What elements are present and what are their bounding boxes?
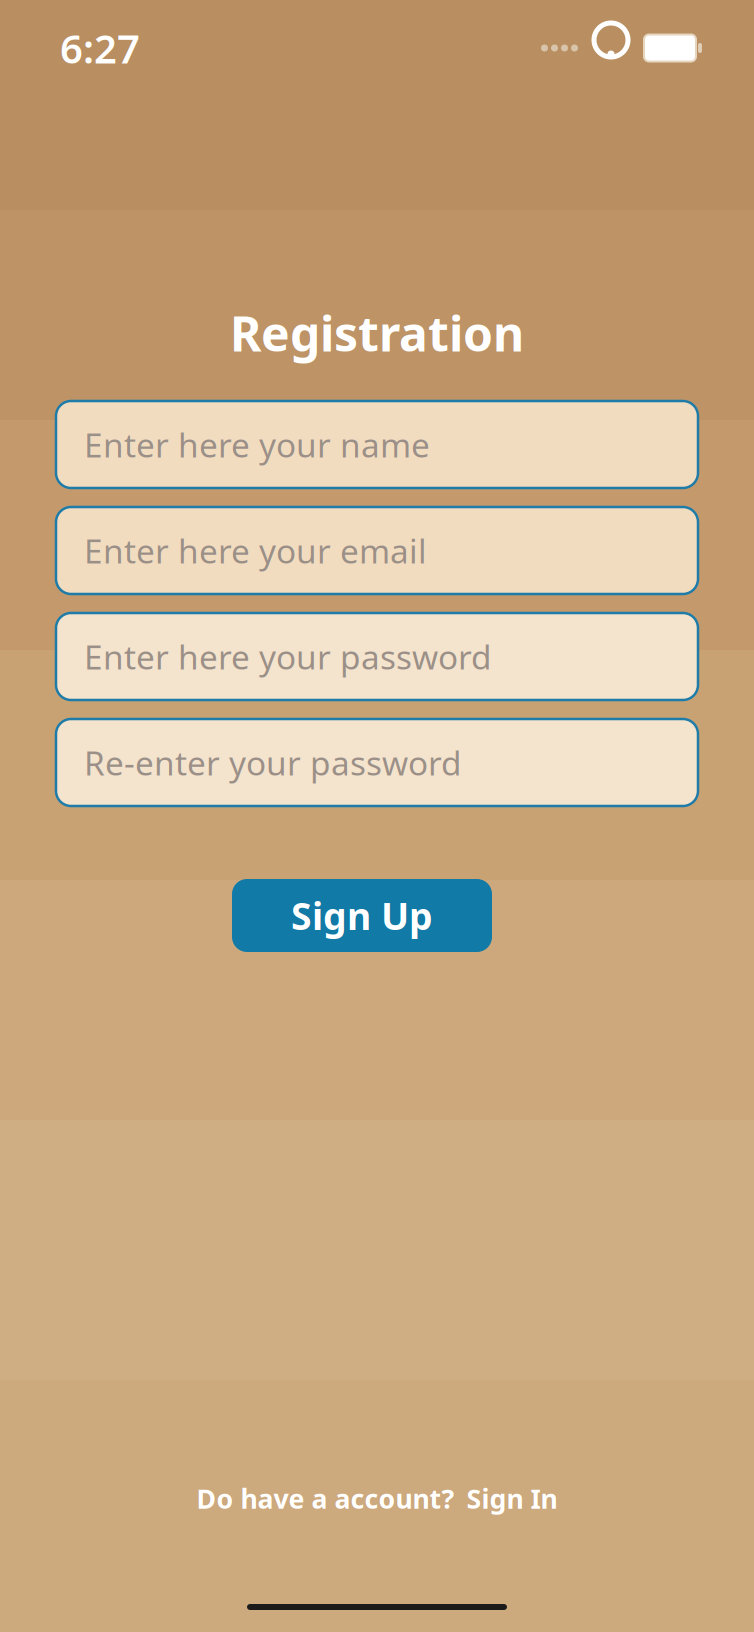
staticText: Sign Up: [291, 891, 433, 940]
staticText: Enter here your password: [84, 634, 492, 679]
staticText: Do have a account?: [196, 1481, 454, 1516]
staticText: Enter here your email: [84, 528, 427, 573]
staticText: Enter here your name: [84, 422, 430, 467]
staticText: Re-enter your password: [84, 740, 462, 785]
button[interactable]: Sign Up: [232, 879, 492, 952]
button[interactable]: Do have a account?: [176, 1473, 577, 1524]
staticText: Registration: [230, 301, 524, 365]
staticText: 6:27: [60, 21, 140, 74]
staticText: Sign In: [466, 1481, 557, 1516]
